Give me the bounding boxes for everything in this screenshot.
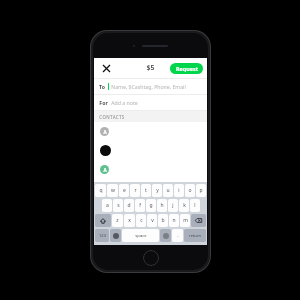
button[interactable]: Backspace: [191, 214, 206, 227]
button[interactable]: space: [122, 229, 159, 242]
staticText: j: [172, 202, 174, 209]
staticText: u: [166, 187, 170, 194]
button[interactable]: [94, 140, 207, 160]
button[interactable]: j: [168, 199, 178, 212]
button[interactable]: x: [124, 214, 135, 227]
staticText: 123: [99, 233, 106, 238]
staticText: r: [134, 187, 137, 194]
button[interactable]: Return: [184, 229, 206, 242]
staticText: Request: [176, 65, 198, 72]
staticText: i: [178, 187, 180, 194]
button[interactable]: w: [107, 184, 118, 197]
staticText: k: [183, 202, 186, 209]
button[interactable]: n: [169, 214, 179, 227]
button[interactable]: r: [130, 184, 140, 197]
staticText: space: [135, 233, 147, 239]
staticText: e: [123, 187, 126, 194]
staticText: q: [99, 187, 103, 194]
button[interactable]: A: [94, 122, 207, 140]
staticText: .: [177, 232, 179, 239]
staticText: m: [183, 217, 188, 224]
staticText: y: [156, 187, 159, 194]
staticText: A: [103, 167, 107, 173]
staticText: v: [151, 217, 154, 224]
staticText: CONTACTS: [99, 114, 125, 120]
staticText: w: [111, 187, 115, 194]
button[interactable]: h: [157, 199, 167, 212]
button[interactable]: u: [163, 184, 173, 197]
button[interactable]: b: [158, 214, 168, 227]
staticText: p: [199, 187, 203, 194]
staticText: $5: [146, 63, 155, 73]
button[interactable]: m: [180, 214, 190, 227]
staticText: g: [149, 202, 153, 209]
staticText: z: [116, 217, 119, 224]
staticText: return: [189, 233, 201, 238]
button[interactable]: a: [102, 199, 112, 212]
staticText: o: [188, 187, 192, 194]
button[interactable]: q: [95, 184, 106, 197]
staticText: l: [194, 202, 196, 209]
button[interactable]: l: [190, 199, 200, 212]
button[interactable]: Dictation: [160, 229, 171, 242]
button[interactable]: A: [94, 160, 207, 178]
button[interactable]: i: [174, 184, 184, 197]
staticText: Name, $Cashtag, Phone, Email: [111, 83, 186, 90]
staticText: d: [127, 202, 131, 209]
button[interactable]: d: [124, 199, 134, 212]
staticText: n: [172, 217, 176, 224]
staticText: To: [99, 83, 105, 90]
button[interactable]: f: [135, 199, 145, 212]
button[interactable]: Numbers: [95, 229, 109, 242]
button[interactable]: g: [146, 199, 156, 212]
button[interactable]: v: [147, 214, 157, 227]
button[interactable]: o: [185, 184, 195, 197]
button[interactable]: e: [119, 184, 129, 197]
button[interactable]: s: [113, 199, 123, 212]
staticText: h: [160, 202, 164, 209]
button[interactable]: Emoji: [110, 229, 121, 242]
staticText: a: [106, 202, 109, 209]
staticText: f: [139, 202, 141, 209]
button[interactable]: For: [94, 95, 207, 110]
staticText: Add a note: [111, 99, 138, 106]
button[interactable]: .: [172, 229, 183, 242]
button[interactable]: Close: [99, 61, 113, 75]
staticText: For: [99, 99, 108, 106]
staticText: A: [103, 129, 107, 135]
staticText: t: [145, 187, 147, 194]
button[interactable]: Shift: [95, 214, 111, 227]
staticText: x: [128, 217, 131, 224]
button[interactable]: y: [152, 184, 162, 197]
button[interactable]: t: [141, 184, 151, 197]
button[interactable]: p: [196, 184, 206, 197]
staticText: c: [140, 217, 143, 224]
staticText: b: [161, 217, 165, 224]
button[interactable]: c: [136, 214, 146, 227]
button[interactable]: Request: [170, 63, 203, 74]
button[interactable]: z: [112, 214, 123, 227]
button[interactable]: To: [94, 79, 207, 94]
button[interactable]: k: [179, 199, 189, 212]
staticText: s: [117, 202, 120, 209]
